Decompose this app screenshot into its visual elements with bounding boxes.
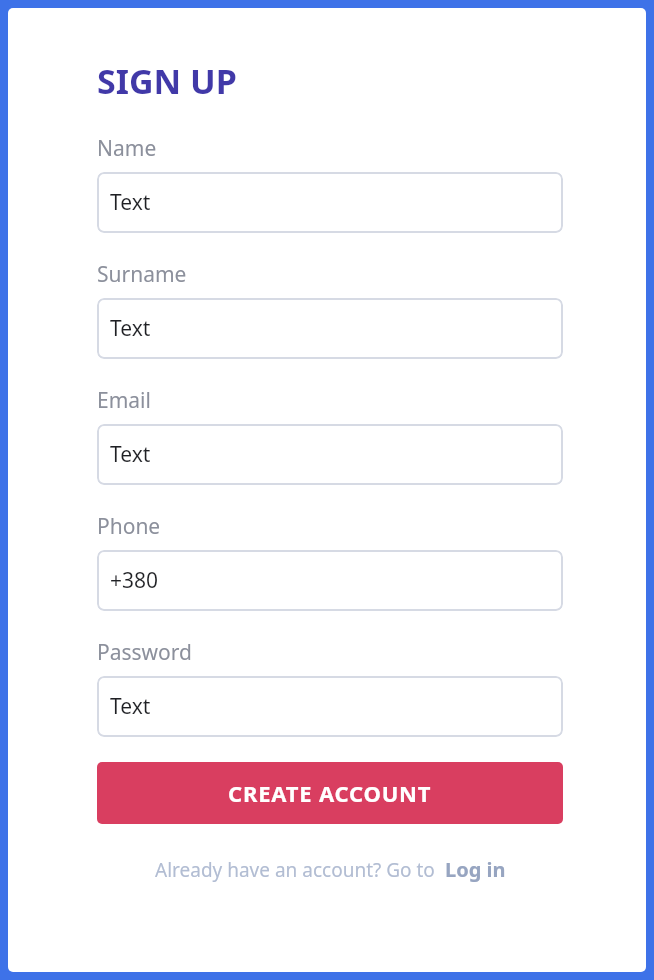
button[interactable]: Log in — [445, 856, 506, 883]
button[interactable]: Text — [97, 676, 563, 737]
button[interactable]: Text — [97, 424, 563, 485]
button[interactable]: CREATE ACCOUNT — [97, 762, 563, 824]
staticText: CREATE ACCOUNT — [228, 778, 432, 808]
staticText: Text — [110, 188, 151, 217]
staticText: Name — [97, 134, 157, 163]
staticText: Email — [97, 386, 151, 415]
button[interactable]: +380 — [97, 550, 563, 611]
staticText: +380 — [110, 566, 159, 595]
staticText: Log in — [445, 856, 506, 883]
staticText: SIGN UP — [97, 58, 237, 104]
button[interactable]: Text — [97, 298, 563, 359]
staticText: Surname — [97, 260, 187, 289]
staticText: Already have an account? Go to — [155, 857, 435, 883]
staticText: Phone — [97, 512, 161, 541]
staticText: Text — [110, 692, 151, 721]
button[interactable]: Text — [97, 172, 563, 233]
staticText: Text — [110, 314, 151, 343]
staticText: Password — [97, 638, 192, 667]
staticText: Text — [110, 440, 151, 469]
